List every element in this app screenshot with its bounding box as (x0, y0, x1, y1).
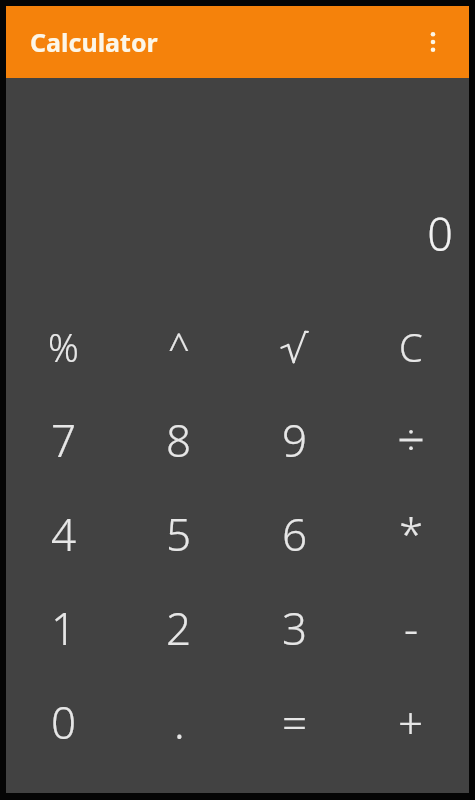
staticText: 6 (282, 504, 308, 564)
staticText: 1 (51, 598, 77, 658)
staticText: 0 (51, 692, 77, 752)
button[interactable]: 5 (121, 487, 237, 581)
staticText: 3 (282, 598, 308, 658)
button[interactable]: 2 (121, 581, 237, 675)
button[interactable]: 7 (6, 393, 121, 487)
button[interactable]: C (353, 300, 469, 393)
button[interactable]: % (6, 300, 121, 393)
staticText: ^ (168, 321, 190, 373)
staticText: 5 (166, 504, 192, 564)
button[interactable]: . (121, 675, 237, 769)
button[interactable]: ^ (121, 300, 237, 393)
staticText: + (398, 692, 424, 752)
staticText: - (404, 598, 419, 658)
button[interactable]: 6 (237, 487, 353, 581)
button[interactable]: 3 (237, 581, 353, 675)
staticText: C (399, 321, 423, 373)
staticText: . (174, 692, 185, 752)
staticText: 2 (166, 598, 192, 658)
button[interactable]: + (353, 675, 469, 769)
staticText: 4 (51, 504, 77, 564)
staticText: * (399, 504, 424, 564)
button[interactable]: 9 (237, 393, 353, 487)
staticText: 0 (427, 203, 453, 264)
button[interactable]: = (237, 675, 353, 769)
other: Square root (278, 327, 312, 367)
staticText: 8 (166, 410, 192, 470)
button[interactable]: 1 (6, 581, 121, 675)
staticText: 9 (282, 410, 308, 470)
button[interactable]: Divide (353, 393, 469, 487)
button[interactable]: Square root (237, 300, 353, 393)
staticText: % (48, 321, 79, 373)
staticText: = (282, 692, 308, 752)
button[interactable]: - (353, 581, 469, 675)
staticText: 7 (51, 410, 77, 470)
other: Divide (394, 423, 428, 457)
button[interactable]: More options (413, 22, 453, 62)
button[interactable]: * (353, 487, 469, 581)
button[interactable]: 0 (6, 675, 121, 769)
button[interactable]: 8 (121, 393, 237, 487)
button[interactable]: 4 (6, 487, 121, 581)
staticText: Calculator (30, 25, 158, 59)
